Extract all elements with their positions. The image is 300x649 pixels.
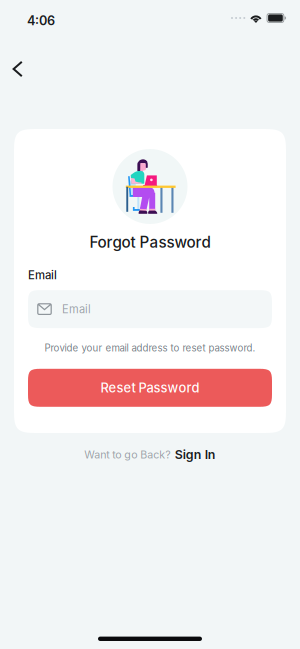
staticText: Sign In <box>175 447 216 462</box>
button[interactable]: Sign In <box>175 447 216 462</box>
button[interactable]: Back <box>0 55 44 83</box>
button[interactable]: Email <box>28 290 272 328</box>
staticText: 4:06 <box>27 13 55 28</box>
staticText: Email <box>28 268 57 282</box>
staticText: Email <box>62 302 91 316</box>
staticText: Provide your email address to reset pass… <box>44 342 255 354</box>
staticText: Reset Password <box>100 380 199 396</box>
staticText: Want to go Back? <box>84 448 170 461</box>
button[interactable]: Reset Password <box>28 369 272 407</box>
staticText: Forgot Password <box>89 233 210 251</box>
